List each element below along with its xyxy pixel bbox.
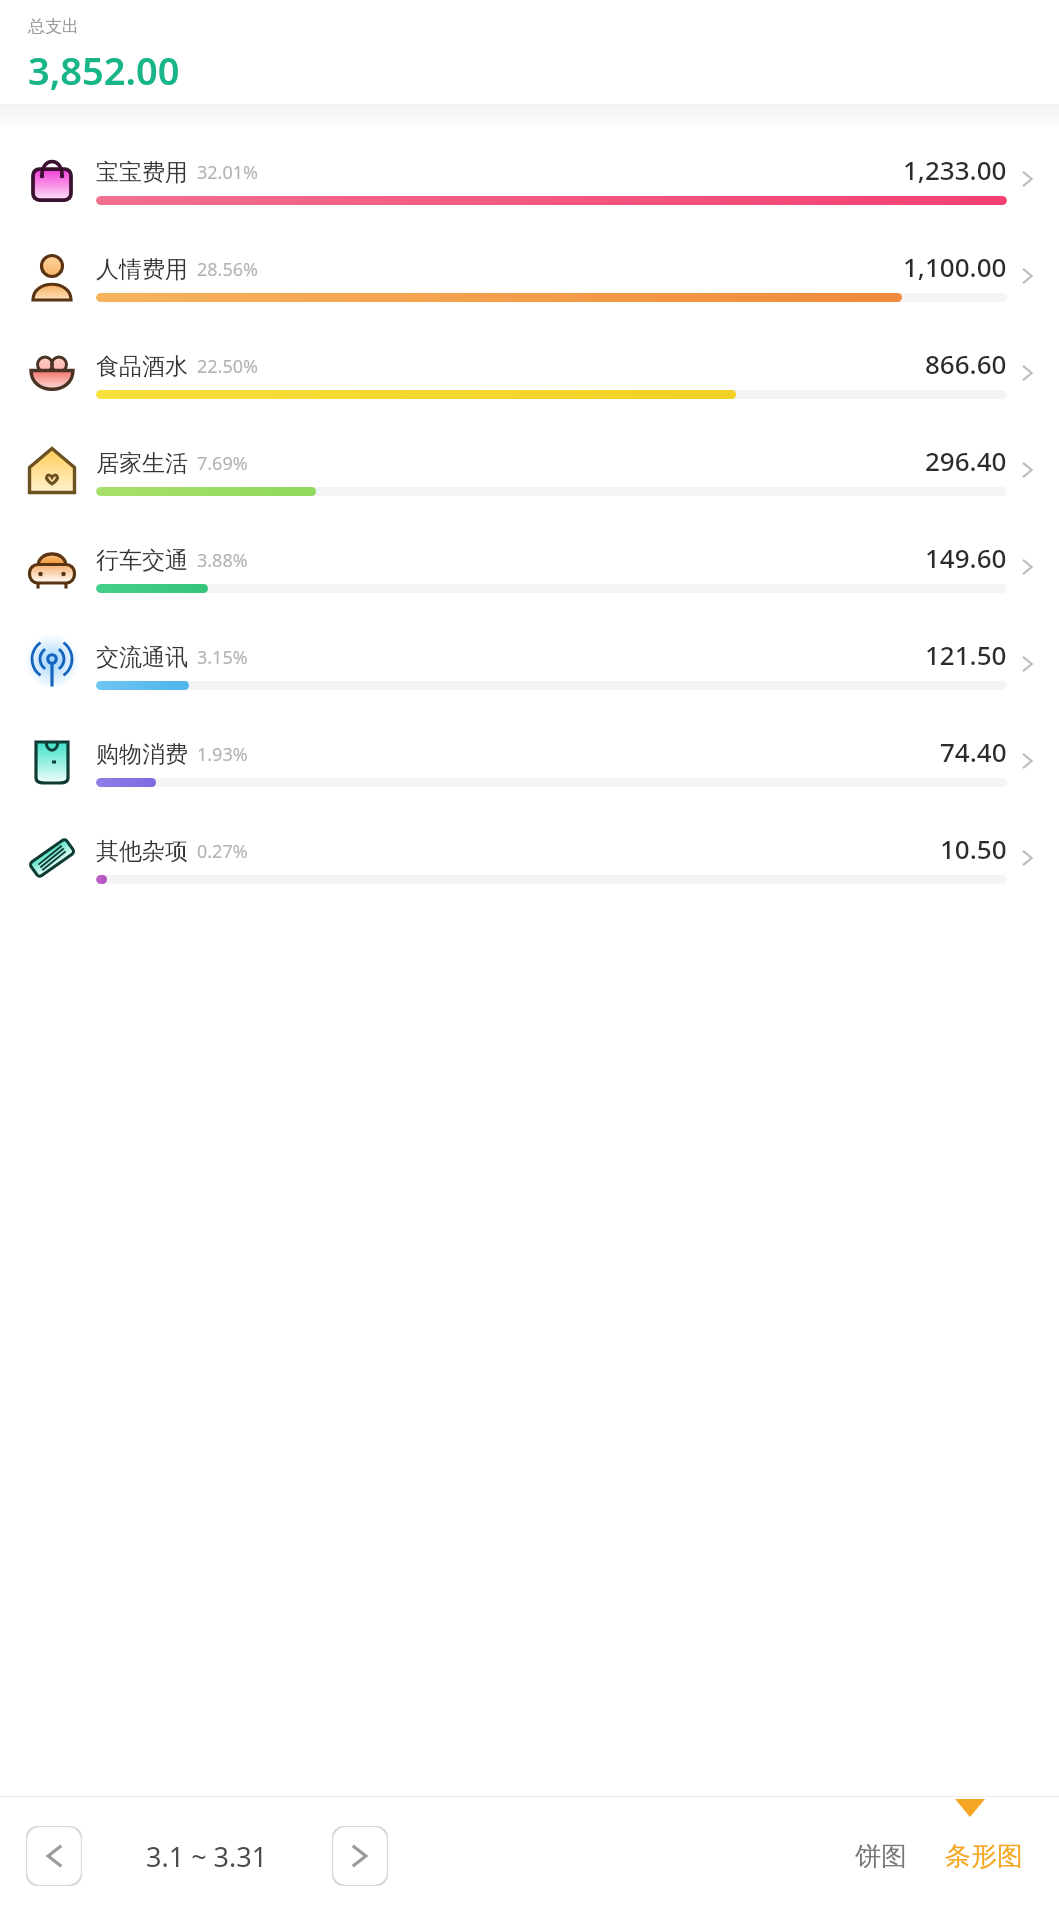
staticText: 购物消费 xyxy=(96,740,188,769)
staticText: 7.69% xyxy=(197,451,248,476)
staticText: 74.40 xyxy=(940,734,1007,769)
button[interactable]: 其他杂项 xyxy=(0,809,1059,906)
button[interactable]: 查看 行车交通 详情 xyxy=(1007,518,1047,615)
button[interactable]: 交流通讯 xyxy=(0,615,1059,712)
staticText: 条形图 xyxy=(945,1840,1023,1873)
button[interactable]: 查看 居家生活 详情 xyxy=(1007,421,1047,518)
button[interactable]: 查看 交流通讯 详情 xyxy=(1007,615,1047,712)
button[interactable]: 人情费用 xyxy=(0,227,1059,324)
staticText: 食品酒水 xyxy=(96,352,188,381)
button[interactable]: 下一月 xyxy=(332,1826,388,1886)
staticText: 饼图 xyxy=(855,1840,907,1873)
staticText: 121.50 xyxy=(925,637,1007,672)
staticText: 人情费用 xyxy=(96,255,188,284)
button[interactable]: 宝宝费用 xyxy=(0,130,1059,227)
button[interactable]: 上一月 xyxy=(26,1826,82,1886)
staticText: 1,100.00 xyxy=(903,249,1007,284)
staticText: 1,233.00 xyxy=(903,152,1007,187)
staticText: 149.60 xyxy=(925,540,1007,575)
staticText: 866.60 xyxy=(925,346,1007,381)
staticText: 22.50% xyxy=(197,354,258,379)
button[interactable]: 查看 食品酒水 详情 xyxy=(1007,324,1047,421)
staticText: 296.40 xyxy=(925,443,1007,478)
button[interactable]: 居家生活 xyxy=(0,421,1059,518)
staticText: 28.56% xyxy=(197,257,258,282)
staticText: 总支出 xyxy=(28,16,79,37)
staticText: 1.93% xyxy=(197,742,248,767)
staticText: 交流通讯 xyxy=(96,643,188,672)
staticText: 10.50 xyxy=(940,831,1007,866)
button[interactable]: 购物消费 xyxy=(0,712,1059,809)
button[interactable]: 查看 宝宝费用 详情 xyxy=(1007,130,1047,227)
button[interactable]: 查看 人情费用 详情 xyxy=(1007,227,1047,324)
staticText: 3.88% xyxy=(197,548,248,573)
staticText: 居家生活 xyxy=(96,449,188,478)
staticText: 3.1 ~ 3.31 xyxy=(146,1838,268,1875)
staticText: 32.01% xyxy=(197,160,258,185)
staticText: 宝宝费用 xyxy=(96,158,188,187)
button[interactable]: 查看 购物消费 详情 xyxy=(1007,712,1047,809)
staticText: 3.15% xyxy=(197,645,248,670)
staticText: 3,852.00 xyxy=(28,44,180,96)
staticText: 0.27% xyxy=(197,839,248,864)
button[interactable]: 行车交通 xyxy=(0,518,1059,615)
button[interactable]: 查看 其他杂项 详情 xyxy=(1007,809,1047,906)
button[interactable]: 条形图 xyxy=(935,1832,1033,1881)
staticText: 其他杂项 xyxy=(96,837,188,866)
staticText: 行车交通 xyxy=(96,546,188,575)
button[interactable]: 食品酒水 xyxy=(0,324,1059,421)
button[interactable]: 饼图 xyxy=(845,1832,917,1881)
